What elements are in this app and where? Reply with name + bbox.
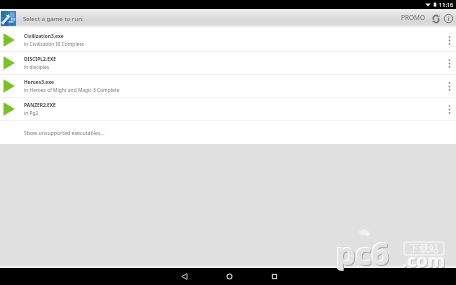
button[interactable]: Home xyxy=(221,268,238,285)
button[interactable]: DISCIPL2.EXE xyxy=(0,52,456,74)
button[interactable]: PROMO xyxy=(397,11,429,26)
button[interactable]: Back xyxy=(176,268,193,285)
button[interactable]: More options xyxy=(436,75,456,97)
button[interactable]: Info xyxy=(442,12,455,25)
button[interactable]: More options xyxy=(436,29,456,51)
staticText: in Pg2 xyxy=(24,110,39,117)
button[interactable]: Heroes3.exe xyxy=(0,75,456,97)
staticText: Show unsupported executables... xyxy=(24,129,105,136)
staticText: .com xyxy=(402,248,446,273)
button[interactable]: More options xyxy=(436,52,456,74)
staticText: 11:16 xyxy=(439,1,454,9)
button[interactable]: App icon xyxy=(1,11,16,26)
staticText: Civilization3.exe xyxy=(24,33,64,40)
staticText: in disciples xyxy=(24,64,50,71)
button[interactable]: Refresh xyxy=(429,12,442,25)
staticText: DISCIPL2.EXE xyxy=(24,56,56,63)
button[interactable]: Show unsupported executables... xyxy=(0,121,456,143)
button[interactable]: Civilization3.exe xyxy=(0,29,456,51)
button[interactable]: PANZER2.EXE xyxy=(0,98,456,120)
staticText: in Civilization III Complete xyxy=(24,41,84,48)
staticText: PANZER2.EXE xyxy=(24,102,56,109)
staticText: in Heroes of Might and Magic 3 Complete xyxy=(24,87,120,94)
staticText: PROMO xyxy=(401,13,426,22)
staticText: 下载站 xyxy=(409,242,439,255)
staticText: pc6 xyxy=(336,232,390,270)
staticText: Heroes3.exe xyxy=(24,79,54,86)
button[interactable]: More options xyxy=(436,98,456,120)
staticText: Select a game to run: xyxy=(23,14,84,22)
staticText: .com xyxy=(403,249,447,274)
button[interactable]: Recents xyxy=(266,268,283,285)
staticText: pc6 xyxy=(337,233,391,271)
staticText: pc6 xyxy=(335,231,389,269)
